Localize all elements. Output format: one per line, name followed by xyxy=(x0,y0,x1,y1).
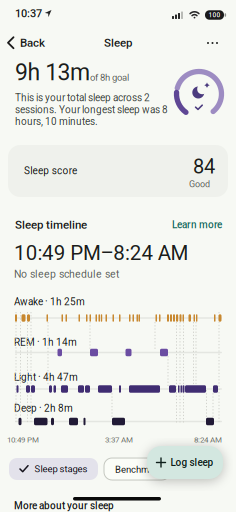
button[interactable]: Sleep score xyxy=(8,145,228,197)
staticText: 10:49 PM xyxy=(7,435,39,444)
staticText: Log sleep xyxy=(170,457,213,468)
staticText: Sleep score xyxy=(24,165,77,177)
staticText: Light · 4h 47m xyxy=(14,371,78,383)
button[interactable]: More options xyxy=(201,36,224,50)
staticText: REM · 1h 14m xyxy=(14,336,77,348)
staticText: Learn more xyxy=(172,219,222,231)
staticText: More about your sleep xyxy=(14,500,114,512)
button[interactable]: Log sleep xyxy=(147,446,223,479)
staticText: 8:24 AM xyxy=(194,435,222,444)
button[interactable]: Back xyxy=(0,33,45,49)
staticText: Sleep stages xyxy=(34,463,87,474)
staticText: No sleep schedule set xyxy=(14,268,119,280)
staticText: 9h 13m xyxy=(15,59,90,86)
staticText: Sleep timeline xyxy=(15,218,87,231)
staticText: Benchmark xyxy=(115,464,162,475)
staticText: of 8h goal xyxy=(90,72,129,83)
staticText: sessions. Your longest sleep was 8 xyxy=(15,104,168,116)
staticText: Deep · 2h 8m xyxy=(14,402,73,414)
staticText: 84 xyxy=(193,155,215,178)
staticText: Awake · 1h 25m xyxy=(14,296,85,308)
button[interactable]: Learn more xyxy=(172,219,222,231)
staticText: 10:49 PM–8:24 AM xyxy=(14,241,188,265)
staticText: 10:37 xyxy=(15,7,42,20)
staticText: This is your total sleep across 2 xyxy=(15,92,150,104)
button[interactable]: Benchmark xyxy=(104,458,170,480)
staticText: Back xyxy=(20,36,45,49)
staticText: 3:37 AM xyxy=(105,435,133,444)
staticText: Sleep xyxy=(104,36,132,49)
button[interactable]: Sleep stages xyxy=(9,458,98,480)
staticText: hours, 10 minutes. xyxy=(15,116,98,127)
staticText: 100 xyxy=(208,11,220,19)
staticText: Good xyxy=(189,179,210,189)
